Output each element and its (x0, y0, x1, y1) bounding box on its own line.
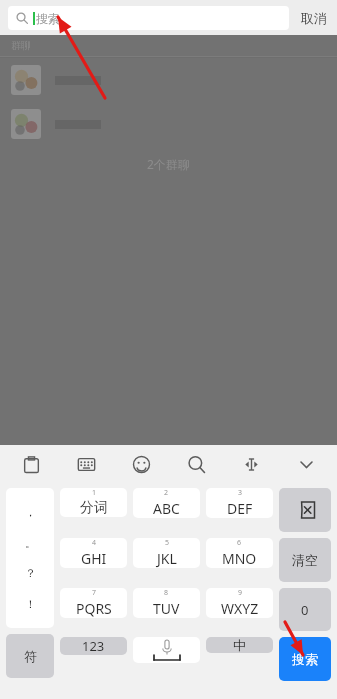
button[interactable]: 7 (60, 588, 127, 618)
staticText: GHI (81, 549, 107, 568)
button[interactable]: 2 (133, 488, 200, 518)
staticText: 0 (301, 601, 309, 619)
button[interactable] (0, 102, 337, 146)
staticText: DEF (227, 499, 253, 518)
staticText: 7 (92, 588, 97, 598)
staticText: 2个群聊 (147, 156, 190, 172)
staticText: 3 (238, 488, 243, 498)
staticText: 清空 (292, 552, 318, 568)
staticText: 中 (233, 637, 246, 653)
staticText: 1 (92, 488, 97, 498)
button[interactable]: Clipboard (14, 447, 48, 481)
staticText: 2 (164, 488, 169, 498)
staticText: 群聊 (11, 39, 31, 52)
staticText: PQRS (76, 599, 112, 618)
staticText: ABC (153, 499, 180, 518)
staticText: JKL (157, 549, 177, 568)
staticText: 8 (164, 588, 169, 598)
button[interactable]: 8 (133, 588, 200, 618)
button[interactable]: 搜索 (8, 6, 289, 30)
button[interactable]: Space (133, 637, 200, 663)
staticText: ！ (25, 597, 36, 611)
button[interactable]: ， (6, 488, 54, 628)
staticText: TUV (153, 599, 180, 618)
button[interactable]: Emoji (124, 447, 158, 481)
staticText: 123 (82, 637, 105, 655)
staticText: ， (25, 505, 36, 519)
button[interactable]: Keyboard layout (69, 447, 103, 481)
button[interactable]: Hide keyboard (289, 447, 323, 481)
staticText: 4 (92, 538, 97, 548)
staticText: 取消 (301, 10, 327, 26)
staticText: 9 (238, 588, 243, 598)
staticText: 搜索 (36, 11, 60, 26)
button[interactable]: 9 (206, 588, 273, 618)
button[interactable]: 符 (6, 634, 54, 678)
staticText: 6 (237, 538, 242, 548)
staticText: MNO (222, 549, 257, 568)
button[interactable]: 5 (133, 538, 200, 568)
button[interactable]: 1 (60, 488, 127, 517)
staticText: WXYZ (221, 599, 259, 618)
staticText: 符 (24, 648, 37, 664)
button[interactable]: 0 (279, 588, 331, 631)
button[interactable]: Move cursor (234, 447, 268, 481)
staticText: ？ (25, 566, 36, 580)
button[interactable]: 123 (60, 637, 127, 655)
button[interactable]: 搜索 (279, 637, 331, 681)
button[interactable] (0, 58, 337, 102)
button[interactable]: 取消 (299, 6, 329, 30)
staticText: 5 (165, 538, 170, 548)
button[interactable]: 中 (206, 637, 273, 653)
staticText: 。 (25, 536, 36, 550)
button[interactable]: 3 (206, 488, 273, 518)
staticText: 搜索 (292, 651, 318, 667)
button[interactable]: Backspace (279, 488, 331, 532)
button[interactable]: Search (179, 447, 213, 481)
button[interactable]: 4 (60, 538, 127, 568)
button[interactable]: 清空 (279, 538, 331, 582)
button[interactable]: 6 (206, 538, 273, 568)
staticText: 分词 (80, 499, 108, 517)
